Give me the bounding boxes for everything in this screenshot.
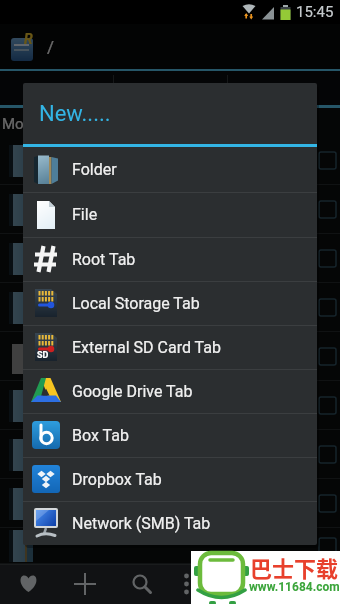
staticText: Google Drive Tab — [72, 382, 193, 401]
staticText: Dropbox Tab — [72, 470, 162, 489]
button[interactable]: Box Tab — [23, 413, 317, 457]
staticText: Box Tab — [72, 426, 129, 445]
staticText: STORAGE — [130, 81, 180, 94]
button[interactable]: Local Storage Tab — [23, 281, 317, 325]
button[interactable]: Google Drive Tab — [23, 369, 317, 413]
staticText: / — [47, 37, 55, 57]
staticText: ROOT — [37, 81, 66, 94]
staticText: www.11684.com — [249, 580, 340, 594]
staticText: 15:45 — [296, 3, 334, 21]
button[interactable] — [128, 570, 156, 598]
staticText: Folder — [72, 160, 117, 179]
staticText: R — [24, 31, 33, 47]
staticText: Network (SMB) Tab — [72, 514, 211, 533]
button[interactable]: Root Tab — [23, 237, 317, 281]
staticText: 巴士下载 — [250, 551, 339, 583]
staticText: SD — [37, 350, 49, 361]
button[interactable]: File — [23, 192, 317, 237]
staticText: Mount R/O — [2, 115, 75, 133]
button[interactable]: SD — [23, 325, 317, 369]
button[interactable] — [14, 570, 42, 598]
staticText: File — [72, 205, 98, 224]
button[interactable]: Dropbox Tab — [23, 457, 317, 501]
button[interactable] — [172, 570, 200, 598]
staticText: External SD Card Tab — [72, 338, 221, 357]
staticText: New..... — [39, 101, 111, 127]
staticText: Local Storage Tab — [72, 294, 200, 313]
button[interactable]: Folder — [23, 147, 317, 192]
staticText: Root Tab — [72, 250, 136, 269]
button[interactable] — [71, 570, 99, 598]
staticText: SD CARD — [268, 81, 314, 94]
button[interactable]: Network (SMB) Tab — [23, 501, 317, 545]
